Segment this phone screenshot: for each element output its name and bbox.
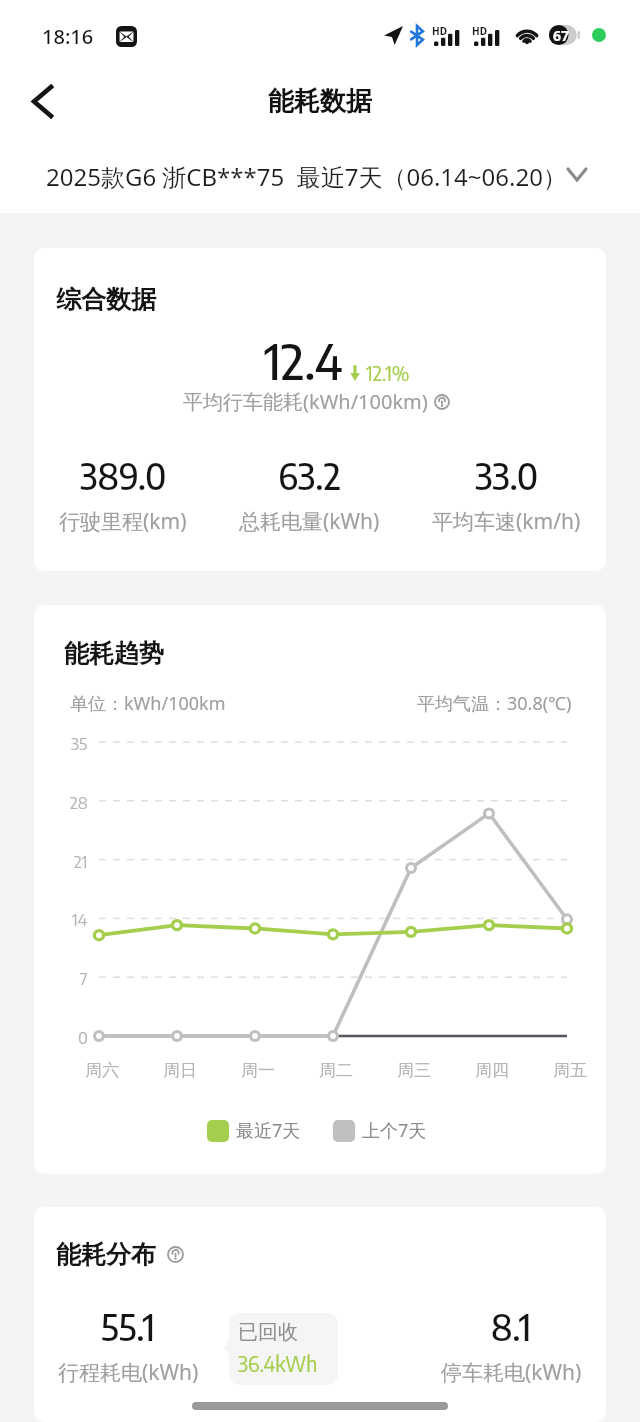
staticText: 36.4kWh <box>238 1350 318 1376</box>
staticText: 35 <box>71 732 88 753</box>
staticText: 28 <box>70 791 88 812</box>
staticText: 停车耗电(kWh) <box>441 1358 582 1387</box>
staticText: 18:16 <box>42 23 94 50</box>
staticText: 上个7天 <box>362 1118 427 1143</box>
staticText: 14 <box>72 908 88 929</box>
staticText: 周六 <box>85 1060 119 1081</box>
staticText: 周三 <box>397 1060 431 1081</box>
staticText: 周二 <box>319 1060 353 1081</box>
staticText: 行驶里程(km) <box>59 507 187 536</box>
staticText: 总耗电量(kWh) <box>239 507 380 536</box>
staticText: 55.1 <box>101 1304 156 1349</box>
button[interactable]: 2025款G6 浙CB***75 最近7天（06.14~06.20） <box>0 132 640 213</box>
staticText: 周五 <box>553 1060 587 1081</box>
staticText: 389.0 <box>80 453 167 498</box>
staticText: 7 <box>80 967 88 988</box>
staticText: 能耗数据 <box>268 85 372 118</box>
staticText: 平均气温：30.8(℃) <box>417 691 572 716</box>
staticText: 平均行车能耗(kWh/100km) <box>183 388 428 415</box>
staticText: 平均车速(km/h) <box>432 507 581 536</box>
button[interactable]: 能耗分布 <box>56 1239 184 1270</box>
staticText: 2025款G6 浙CB***75 最近7天（06.14~06.20） <box>46 160 567 193</box>
staticText: 已回收 <box>238 1320 298 1345</box>
staticText: 8.1 <box>491 1304 532 1349</box>
staticText: 能耗趋势 <box>64 638 164 669</box>
staticText: 0 <box>78 1026 88 1047</box>
staticText: 行程耗电(kWh) <box>58 1358 199 1387</box>
staticText: 周四 <box>475 1060 509 1081</box>
staticText: 67 <box>553 26 570 45</box>
staticText: 最近7天 <box>236 1118 301 1143</box>
button[interactable]: 上个7天 <box>333 1118 427 1143</box>
staticText: HD <box>432 24 447 38</box>
staticText: 12.1% <box>366 360 410 385</box>
button[interactable]: Back <box>16 75 68 127</box>
button[interactable]: 最近7天 <box>207 1118 301 1143</box>
staticText: 能耗分布 <box>56 1239 156 1270</box>
staticText: 63.2 <box>278 453 341 498</box>
staticText: HD <box>472 24 487 38</box>
staticText: 21 <box>74 850 88 871</box>
staticText: 周日 <box>163 1060 197 1081</box>
staticText: 12.4 <box>264 330 343 391</box>
staticText: 单位：kWh/100km <box>70 691 226 716</box>
staticText: 综合数据 <box>56 284 156 315</box>
staticText: 周一 <box>241 1060 275 1081</box>
staticText: 33.0 <box>475 453 539 498</box>
